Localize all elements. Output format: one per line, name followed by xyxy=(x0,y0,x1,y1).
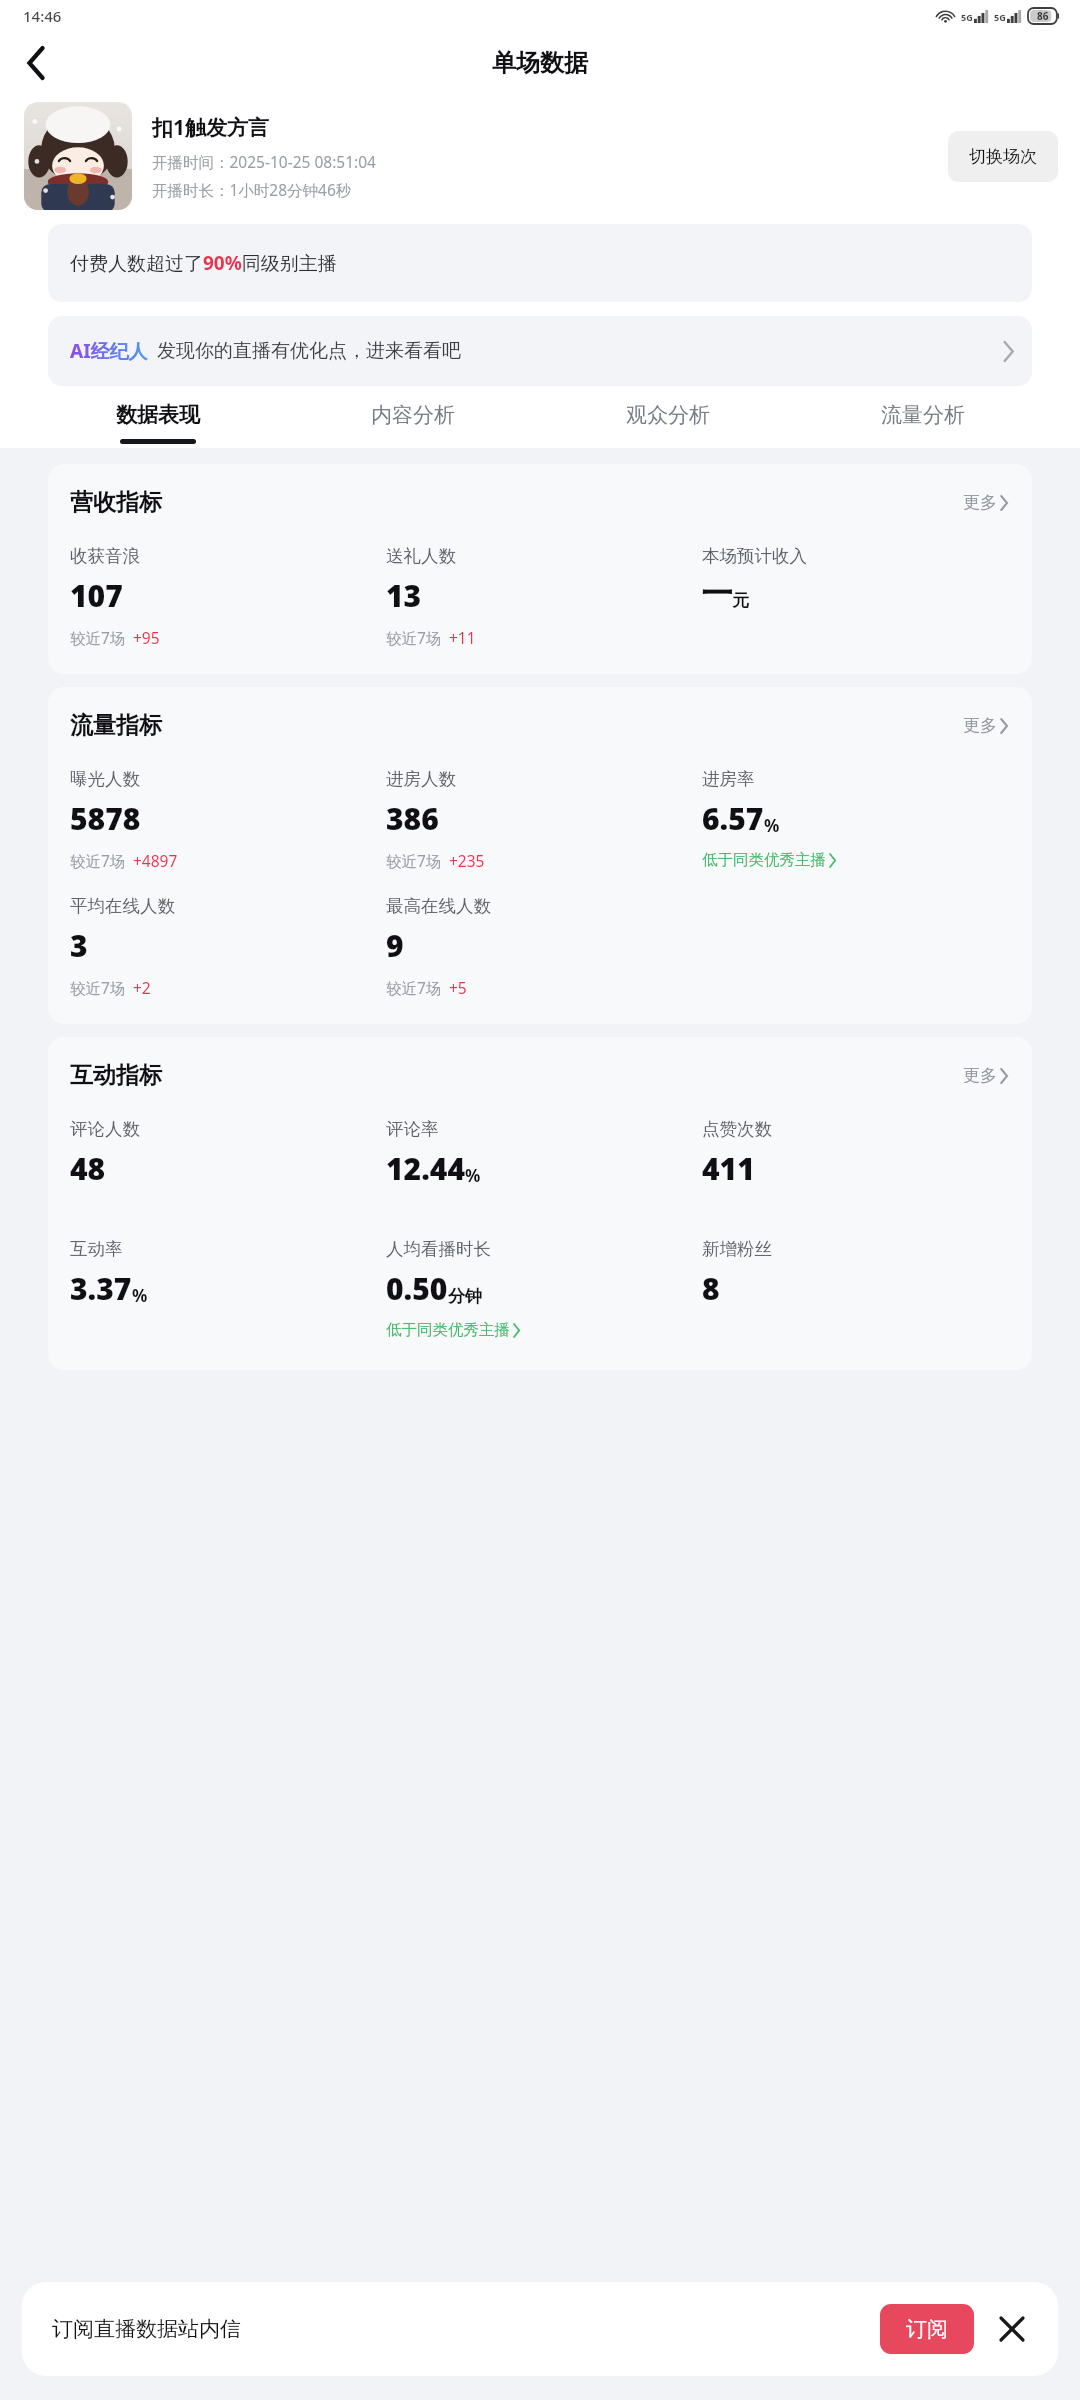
button[interactable]: 付费人数超过了90%同级别主播 xyxy=(48,224,1032,302)
button[interactable]: 更多 xyxy=(957,1059,1014,1092)
staticText: 5878 xyxy=(70,798,141,839)
staticText: 分钟 xyxy=(448,1286,482,1307)
staticText: 107 xyxy=(70,575,123,616)
staticText: 进房率 xyxy=(702,768,755,790)
button[interactable]: 低于同类优秀主播 xyxy=(702,850,836,870)
staticText: 较近7场 xyxy=(386,627,442,648)
button[interactable]: 内容分析 xyxy=(285,402,540,444)
staticText: 订阅直播数据站内信 xyxy=(52,2316,241,2342)
staticText: 观众分析 xyxy=(626,402,710,428)
staticText: 5G xyxy=(994,11,1006,23)
staticText: 5G xyxy=(961,11,973,23)
staticText: 发现你的直播有优化点，进来看看吧 xyxy=(157,339,461,363)
staticText: 互动率 xyxy=(70,1238,123,1260)
staticText: 低于同类优秀主播 xyxy=(702,850,826,870)
staticText: 营收指标 xyxy=(70,488,162,517)
staticText: 扣1触发方言 xyxy=(152,113,270,142)
staticText: % xyxy=(465,1164,481,1187)
staticText: 8 xyxy=(702,1268,720,1309)
button[interactable]: Close xyxy=(990,2307,1034,2351)
button[interactable]: AI经纪人 xyxy=(48,316,1032,386)
staticText: 14:46 xyxy=(23,6,62,26)
staticText: 9 xyxy=(386,925,404,966)
staticText: 较近7场 xyxy=(386,977,442,998)
staticText: 单场数据 xyxy=(492,48,588,78)
staticText: 较近7场 xyxy=(70,977,126,998)
staticText: 最高在线人数 xyxy=(386,895,491,917)
staticText: +95 xyxy=(133,627,160,648)
staticText: +2 xyxy=(133,977,151,998)
staticText: 更多 xyxy=(963,492,997,513)
staticText: 较近7场 xyxy=(70,850,126,871)
staticText: AI经纪人 xyxy=(70,338,148,364)
staticText: 开播时长：1小时28分钟46秒 xyxy=(152,179,352,200)
staticText: +5 xyxy=(449,977,467,998)
staticText: 低于同类优秀主播 xyxy=(386,1320,510,1340)
staticText: 流量分析 xyxy=(881,402,965,428)
button[interactable]: 更多 xyxy=(957,709,1014,742)
staticText: 进房人数 xyxy=(386,768,456,790)
staticText: 互动指标 xyxy=(70,1061,162,1090)
staticText: 平均在线人数 xyxy=(70,895,175,917)
staticText: 评论人数 xyxy=(70,1118,140,1140)
button[interactable]: Back xyxy=(14,40,60,86)
staticText: 元 xyxy=(732,590,749,611)
staticText: 订阅 xyxy=(906,2316,948,2342)
staticText: 切换场次 xyxy=(969,146,1037,167)
button[interactable]: 观众分析 xyxy=(540,402,795,444)
staticText: 0.50 xyxy=(386,1268,448,1309)
staticText: 较近7场 xyxy=(386,850,442,871)
staticText: 更多 xyxy=(963,1065,997,1086)
staticText: % xyxy=(132,1284,148,1307)
staticText: +235 xyxy=(449,850,485,871)
staticText: 386 xyxy=(386,798,439,839)
staticText: 送礼人数 xyxy=(386,545,456,567)
staticText: 12.44 xyxy=(386,1148,465,1189)
staticText: 较近7场 xyxy=(70,627,126,648)
button[interactable]: 切换场次 xyxy=(948,131,1058,182)
staticText: 本场预计收入 xyxy=(702,545,807,567)
staticText: 3.37 xyxy=(70,1268,132,1309)
staticText: 开播时间：2025-10-25 08:51:04 xyxy=(152,151,376,172)
staticText: 86 xyxy=(1037,9,1049,23)
button[interactable]: 低于同类优秀主播 xyxy=(386,1320,520,1340)
staticText: +11 xyxy=(449,627,476,648)
staticText: 收获音浪 xyxy=(70,545,140,567)
button[interactable]: 更多 xyxy=(957,486,1014,519)
staticText: 数据表现 xyxy=(116,402,200,428)
staticText: 48 xyxy=(70,1148,106,1189)
staticText: 人均看播时长 xyxy=(386,1238,491,1260)
staticText: 6.57 xyxy=(702,798,764,839)
staticText: 411 xyxy=(702,1148,755,1189)
staticText: 流量指标 xyxy=(70,711,162,740)
staticText: 新增粉丝 xyxy=(702,1238,772,1260)
staticText: 点赞次数 xyxy=(702,1118,772,1140)
button[interactable]: 订阅 xyxy=(880,2304,974,2354)
staticText: 13 xyxy=(386,575,422,616)
staticText: +4897 xyxy=(133,850,178,871)
staticText: 内容分析 xyxy=(371,402,455,428)
staticText: % xyxy=(764,814,780,837)
staticText: 更多 xyxy=(963,715,997,736)
staticText: 一 xyxy=(702,575,732,613)
staticText: 付费人数超过了90%同级别主播 xyxy=(70,250,337,276)
button[interactable]: 流量分析 xyxy=(795,402,1050,444)
staticText: 3 xyxy=(70,925,88,966)
staticText: 曝光人数 xyxy=(70,768,140,790)
staticText: 评论率 xyxy=(386,1118,439,1140)
button[interactable]: 数据表现 xyxy=(30,402,285,444)
